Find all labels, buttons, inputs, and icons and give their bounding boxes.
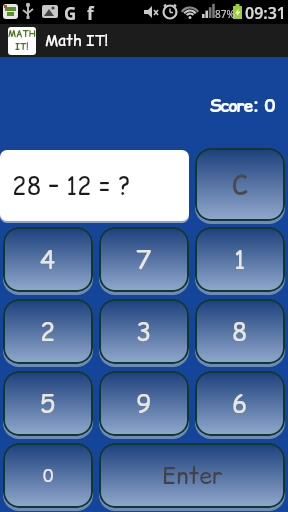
button[interactable]: 0 [3,443,93,508]
button[interactable]: C [195,148,285,221]
staticText: 5 [40,386,56,421]
staticText: 4 [40,242,56,277]
staticText: Math IT! [45,30,109,51]
staticText: G [64,2,77,25]
button[interactable]: 5 [3,371,93,436]
staticText: MATH [8,28,36,41]
staticText: 8 [232,314,248,349]
button[interactable]: 2 [3,299,93,364]
staticText: Score: 0 [210,94,275,118]
button[interactable]: 6 [195,371,285,436]
staticText: 9 [136,386,152,421]
staticText: 28 – 12 = ? [12,169,131,202]
button[interactable]: 7 [99,227,189,292]
staticText: 3 [136,314,152,349]
staticText: 09:31 [245,2,287,24]
button[interactable]: Enter [99,443,285,508]
staticText: IT! [15,41,29,54]
staticText: Enter [162,460,223,492]
staticText: 2 [40,314,56,349]
staticText: 1 [234,242,246,277]
staticText: C [232,166,249,204]
button[interactable]: 3 [99,299,189,364]
button[interactable]: 1 [195,227,285,292]
staticText: 0 [43,464,54,488]
button[interactable]: 8 [195,299,285,364]
staticText: 6 [232,386,248,421]
button[interactable]: 4 [3,227,93,292]
button[interactable]: 9 [99,371,189,436]
staticText: f [87,2,94,25]
staticText: 87% [215,7,235,21]
staticText: 7 [136,242,152,277]
